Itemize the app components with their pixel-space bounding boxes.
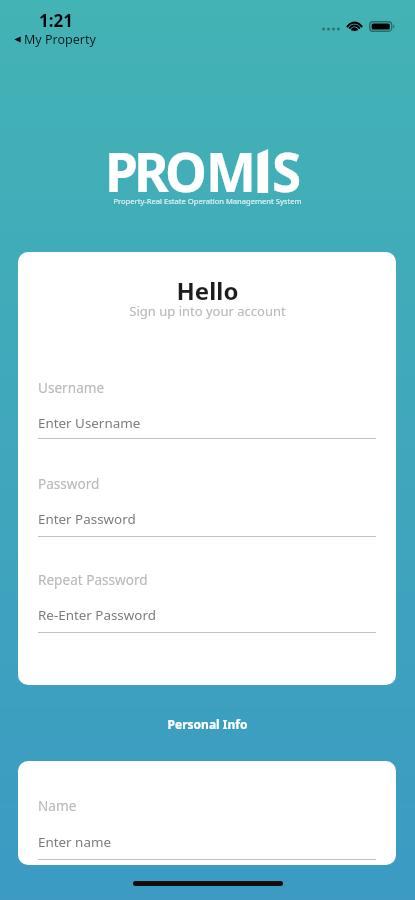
staticText: Enter Password [38,510,136,528]
staticText: Re-Enter Password [38,606,156,624]
staticText: Name [38,796,77,815]
staticText: Sign up into your account [0,302,415,320]
other: Cellular signal [322,27,340,31]
staticText: Enter Username [38,414,141,432]
staticText: My Property [24,31,96,48]
button[interactable]: Username [38,378,376,448]
button[interactable]: Name [38,796,376,869]
staticText: 1:21 [39,9,73,32]
staticText: Hello [0,274,415,307]
staticText: R [134,135,169,207]
staticText: Repeat Password [38,570,148,589]
other: Wi-Fi [346,20,363,32]
staticText: Property-Real Estate Operation Managemen… [0,196,415,206]
button[interactable]: Password [38,474,376,546]
staticText: Password [38,474,100,493]
staticText: Enter name [38,833,111,851]
staticText: M [206,135,256,207]
button[interactable]: Repeat Password [38,570,376,642]
staticText: Username [38,378,105,397]
staticText: P [105,135,138,207]
button[interactable]: Personal Info [0,716,415,732]
staticText: S [272,135,302,207]
staticText: O [165,135,207,207]
other: Battery [369,21,395,32]
